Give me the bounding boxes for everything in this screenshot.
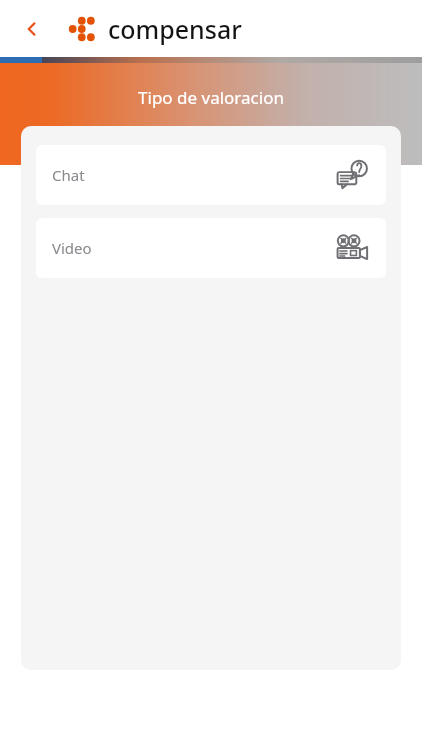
- staticText: Chat: [52, 165, 85, 185]
- button[interactable]: Video: [36, 218, 386, 278]
- button[interactable]: Chat: [36, 145, 386, 205]
- button[interactable]: Back: [12, 9, 52, 49]
- staticText: Video: [52, 238, 92, 258]
- staticText: compensar: [108, 12, 242, 46]
- staticText: Tipo de valoracion: [138, 86, 284, 109]
